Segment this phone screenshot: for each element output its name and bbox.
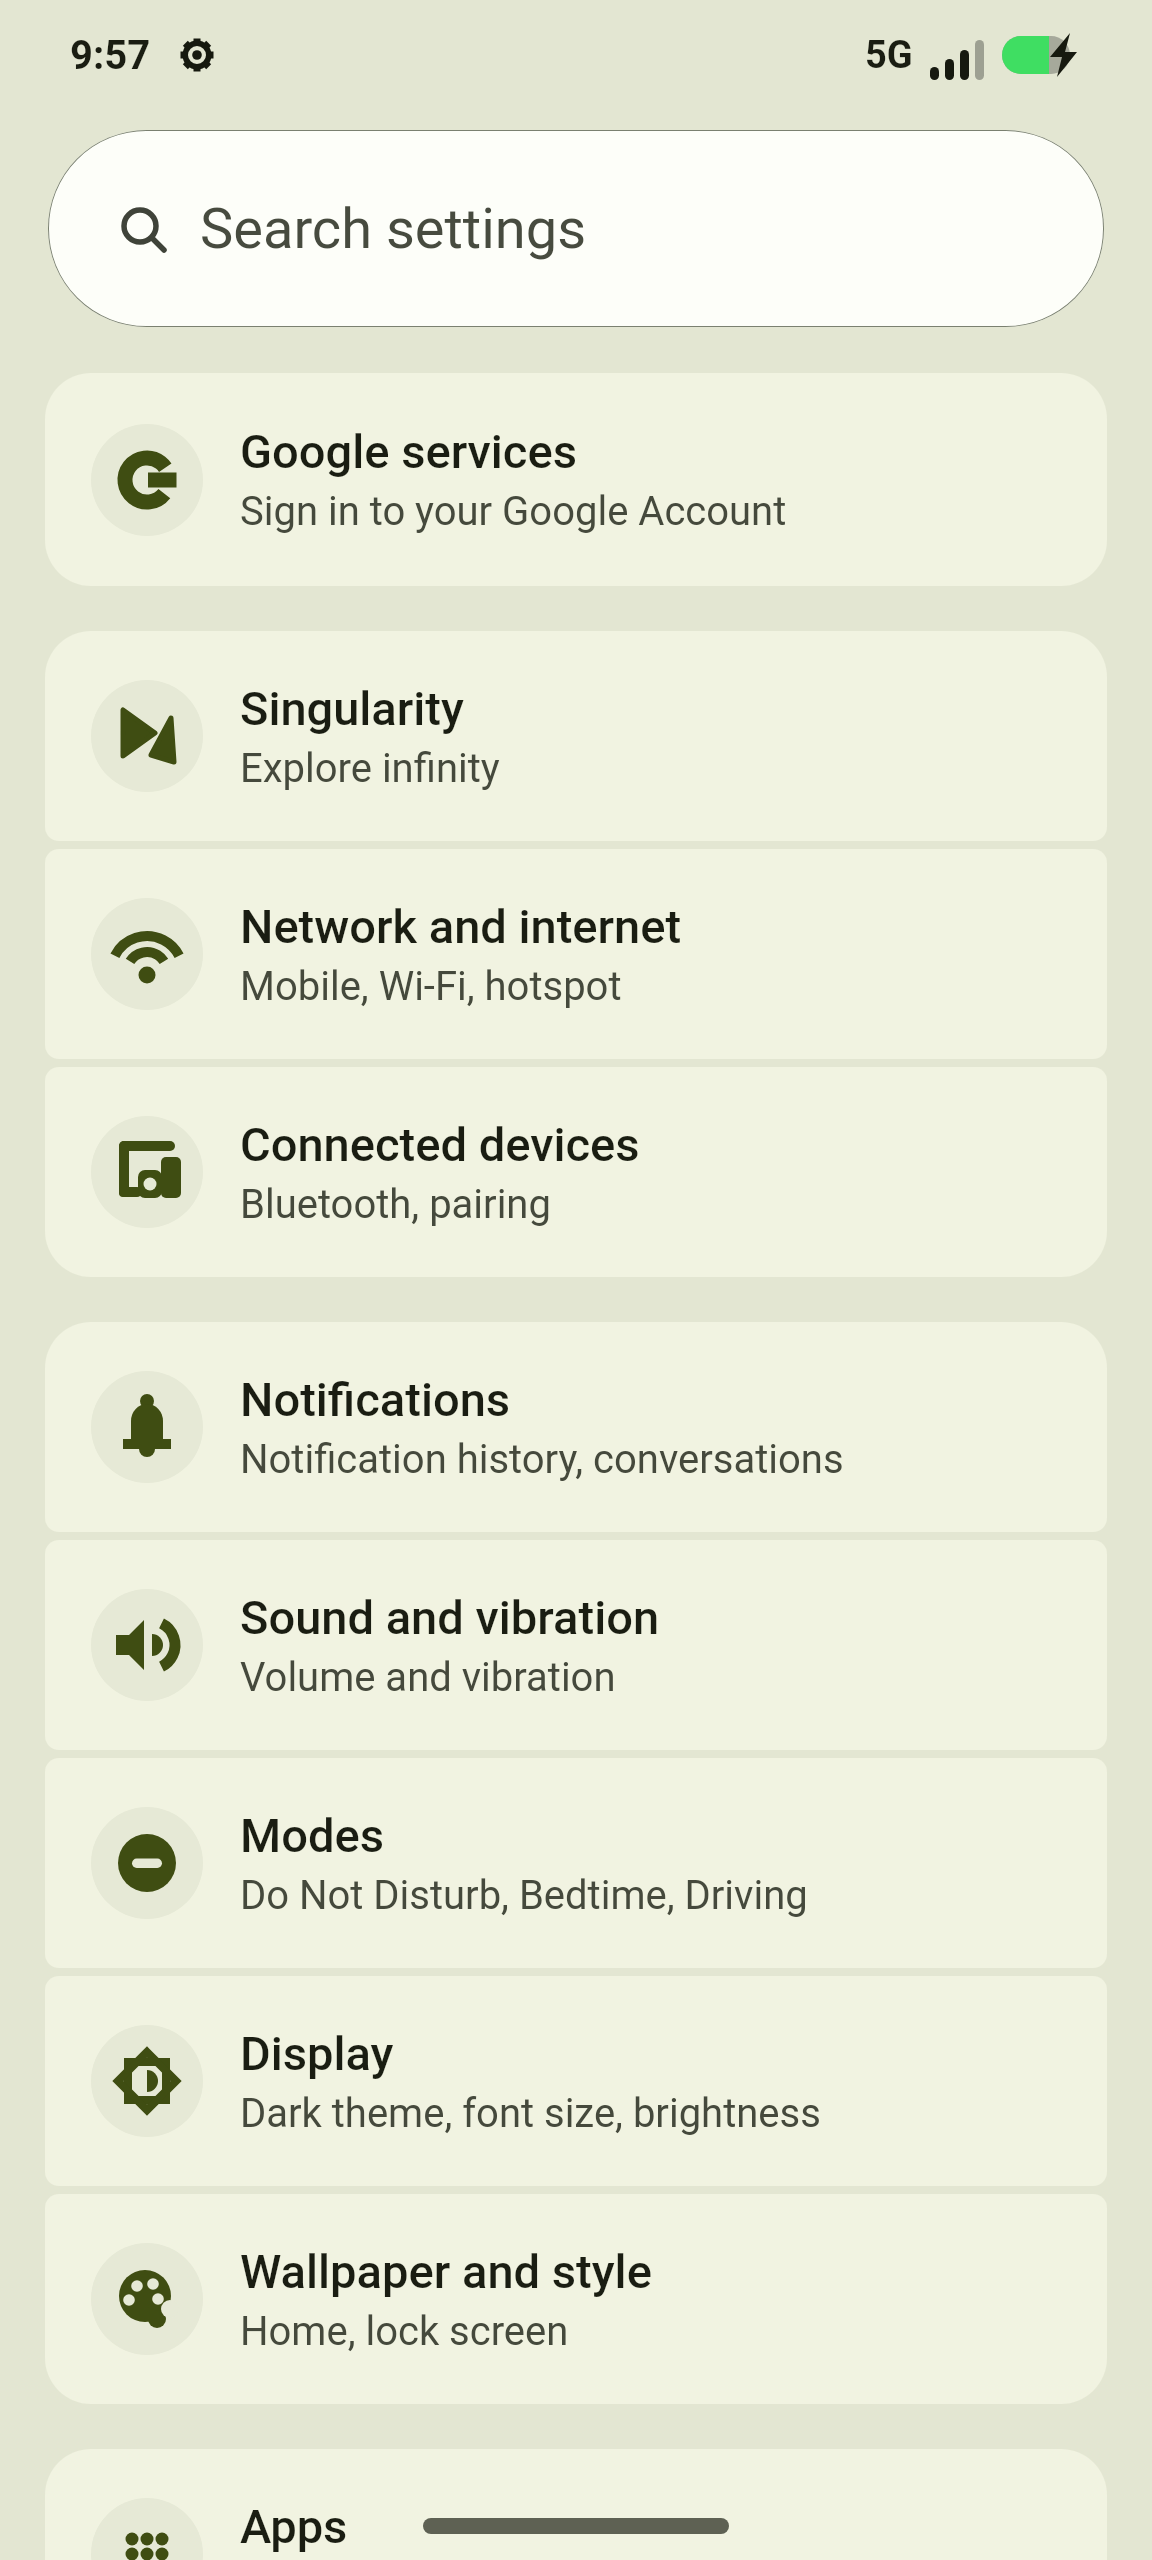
button[interactable]: Search settings [48, 130, 1104, 327]
button[interactable]: Apps [45, 2449, 1107, 2560]
staticText: Explore infinity [240, 745, 500, 792]
staticText: Search settings [200, 196, 587, 262]
button[interactable]: Network and internet [45, 849, 1107, 1059]
button[interactable]: Google services [45, 373, 1107, 586]
button[interactable]: Display [45, 1976, 1107, 2186]
button[interactable]: Sound and vibration [45, 1540, 1107, 1750]
staticText: Google services [240, 424, 577, 479]
staticText: Home, lock screen [240, 2308, 569, 2355]
staticText: 5G [865, 33, 913, 78]
staticText: Sound and vibration [240, 1590, 660, 1645]
button[interactable]: Notifications [45, 1322, 1107, 1532]
staticText: Notification history, conversations [240, 1436, 844, 1483]
staticText: 9:57 [70, 32, 151, 79]
staticText: Network and internet [240, 899, 682, 954]
button[interactable]: Connected devices [45, 1067, 1107, 1277]
staticText: Bluetooth, pairing [240, 1181, 551, 1228]
button[interactable]: Modes [45, 1758, 1107, 1968]
staticText: Connected devices [240, 1117, 640, 1172]
staticText: Modes [240, 1808, 384, 1863]
staticText: Singularity [240, 681, 464, 736]
staticText: Wallpaper and style [240, 2244, 652, 2299]
staticText: Do Not Disturb, Bedtime, Driving [240, 1872, 808, 1919]
button[interactable]: Singularity [45, 631, 1107, 841]
staticText: Volume and vibration [240, 1654, 616, 1701]
staticText: Mobile, Wi-Fi, hotspot [240, 963, 622, 1010]
button[interactable]: Wallpaper and style [45, 2194, 1107, 2404]
staticText: Apps [240, 2499, 348, 2554]
staticText: Notifications [240, 1372, 511, 1427]
staticText: Sign in to your Google Account [240, 488, 787, 535]
staticText: Display [240, 2026, 394, 2081]
staticText: Dark theme, font size, brightness [240, 2090, 821, 2137]
